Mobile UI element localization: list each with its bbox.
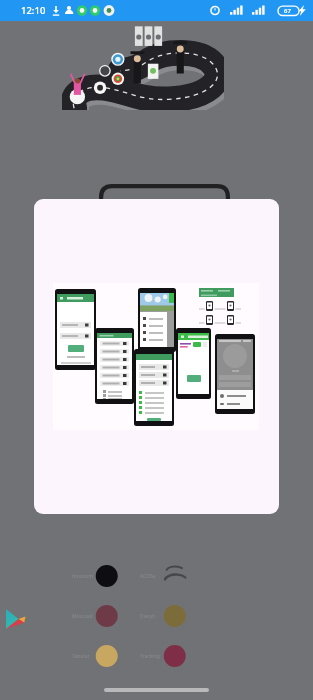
staticText: Diaryb	[140, 613, 156, 620]
staticText: Moocool	[72, 613, 93, 620]
button[interactable]	[34, 199, 279, 514]
button[interactable]: Moocool	[72, 601, 134, 631]
button[interactable]: Tabular	[72, 641, 134, 671]
staticText: 67	[284, 7, 291, 15]
staticText: ACDSe	[140, 573, 156, 580]
staticText: Tabular	[72, 653, 90, 660]
button[interactable]: Tracking	[140, 641, 202, 671]
button[interactable]: ACDSe	[140, 561, 202, 591]
staticText: 12:10	[21, 4, 46, 17]
staticText: Tracking	[140, 653, 160, 660]
button[interactable]: moocom	[72, 561, 134, 591]
staticText: moocom	[72, 573, 93, 580]
button[interactable]: Diaryb	[140, 601, 202, 631]
